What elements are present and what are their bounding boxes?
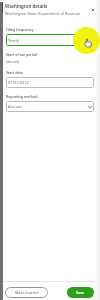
staticText: Washington details (5, 3, 48, 9)
staticText: January (6, 59, 20, 64)
staticText: Accrual (8, 104, 22, 109)
staticText: Filing frequency (6, 27, 34, 32)
staticText: Washington State Department of Revenue (5, 11, 81, 16)
staticText: Start date (6, 70, 23, 75)
button[interactable]: Accrual (6, 101, 94, 112)
button[interactable]: Save (67, 287, 94, 298)
staticText: Start of tax period (6, 52, 38, 57)
staticText: Yearly (8, 38, 19, 43)
button[interactable]: Make inactive (5, 287, 48, 298)
button[interactable]: Close (91, 8, 95, 12)
button[interactable]: Yearly (6, 34, 94, 46)
button[interactable]: 01/01/2012 (6, 77, 94, 88)
staticText: 01/01/2012 (8, 80, 29, 85)
staticText: Reporting method (6, 94, 38, 99)
staticText: Make inactive (15, 290, 39, 295)
staticText: Save (76, 290, 85, 295)
